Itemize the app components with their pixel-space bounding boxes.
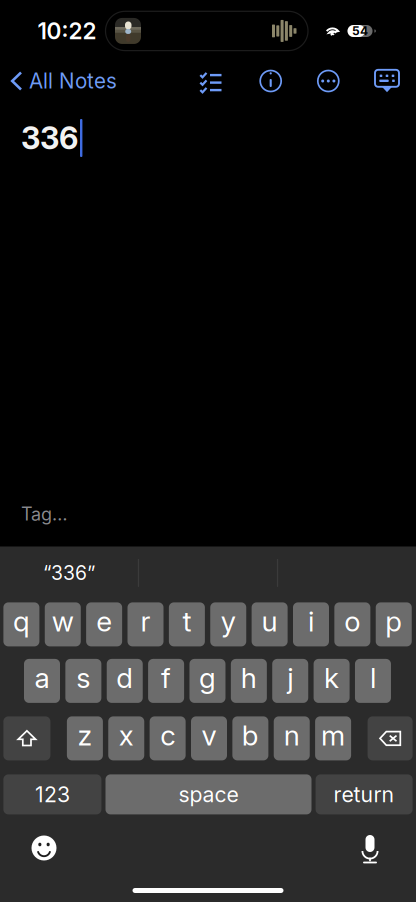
staticText: 10:22 (37, 17, 96, 45)
button[interactable]: v (191, 716, 227, 760)
staticText: n (284, 718, 300, 752)
staticText: 54 (352, 24, 368, 38)
button[interactable]: n (274, 716, 310, 760)
button[interactable]: r (127, 602, 163, 646)
staticText: w (52, 604, 74, 638)
button[interactable]: x (108, 716, 144, 760)
staticText: g (199, 661, 216, 695)
button[interactable]: c (150, 716, 186, 760)
staticText: a (34, 661, 49, 695)
button[interactable]: space (105, 774, 311, 814)
button[interactable]: k (314, 659, 350, 703)
staticText: t (182, 604, 191, 638)
staticText: y (221, 604, 236, 638)
button[interactable]: h (231, 659, 267, 703)
staticText: k (324, 661, 339, 695)
button[interactable]: g (189, 659, 225, 703)
button[interactable]: Delete (368, 716, 413, 760)
staticText: o (344, 604, 360, 638)
staticText: x (119, 718, 134, 752)
button[interactable]: i (293, 602, 329, 646)
button[interactable]: m (315, 716, 351, 760)
staticText: p (385, 604, 402, 638)
staticText: b (242, 718, 259, 752)
button[interactable]: p (376, 602, 412, 646)
button[interactable]: w (45, 602, 81, 646)
staticText: return (334, 781, 395, 807)
staticText: v (201, 718, 216, 752)
button[interactable]: “336” (0, 547, 138, 599)
button[interactable]: More (306, 59, 350, 103)
button[interactable]: z (67, 716, 103, 760)
button[interactable]: e (86, 602, 122, 646)
button[interactable]: Dictation (348, 826, 392, 870)
button[interactable]: q (3, 602, 39, 646)
button[interactable]: All Notes (10, 59, 140, 103)
staticText: r (140, 604, 150, 638)
staticText: d (116, 661, 133, 695)
staticText: e (96, 604, 112, 638)
button[interactable]: u (252, 602, 288, 646)
staticText: u (262, 604, 278, 638)
button[interactable]: t (169, 602, 205, 646)
button[interactable]: return (316, 774, 413, 814)
staticText: 123 (35, 781, 70, 807)
button[interactable]: 123 (3, 774, 101, 814)
staticText: j (287, 661, 293, 695)
button[interactable]: Info (249, 59, 293, 103)
staticText: f (161, 661, 171, 695)
staticText: space (178, 781, 238, 807)
staticText: i (308, 604, 314, 638)
button[interactable]: Hide keyboard (365, 59, 409, 103)
staticText: h (241, 661, 257, 695)
staticText: m (321, 718, 345, 752)
button[interactable]: Checklist (189, 59, 233, 103)
staticText: l (370, 661, 376, 695)
staticText: q (13, 604, 30, 638)
button[interactable]: y (210, 602, 246, 646)
button[interactable]: j (272, 659, 308, 703)
staticText: z (77, 718, 92, 752)
button[interactable]: d (107, 659, 143, 703)
button[interactable]: Emoji (22, 826, 66, 870)
button[interactable]: b (232, 716, 268, 760)
staticText: Tag… (21, 503, 68, 525)
button[interactable]: a (24, 659, 60, 703)
staticText: s (76, 661, 90, 695)
button[interactable]: o (334, 602, 370, 646)
staticText: 336 (21, 119, 78, 156)
staticText: “336” (43, 561, 95, 585)
button[interactable]: s (65, 659, 101, 703)
button[interactable]: l (355, 659, 391, 703)
staticText: c (160, 718, 175, 752)
button[interactable]: f (148, 659, 184, 703)
button[interactable]: Shift (3, 716, 50, 760)
staticText: All Notes (29, 68, 117, 93)
